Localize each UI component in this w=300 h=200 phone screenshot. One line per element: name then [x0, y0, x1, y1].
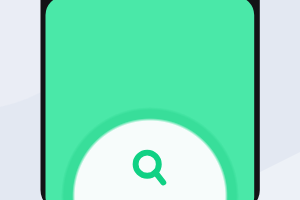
- button[interactable]: Search app illustration: [0, 0, 300, 200]
